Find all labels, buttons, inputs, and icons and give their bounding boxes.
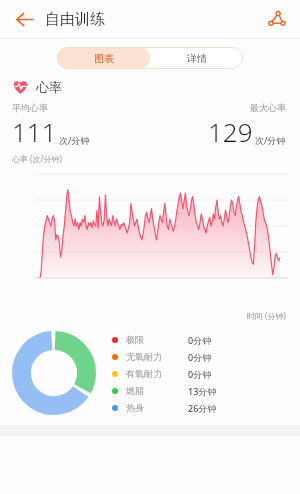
staticText: 无氧耐力 — [126, 351, 188, 362]
staticText: 26分钟 — [188, 402, 217, 414]
staticText: 平均心率 — [12, 102, 48, 113]
staticText: 热身 — [126, 402, 188, 413]
staticText: 燃脂 — [126, 385, 188, 396]
button[interactable]: Back — [9, 4, 39, 34]
staticText: 13分钟 — [188, 385, 217, 397]
staticText: 最大心率 — [250, 102, 286, 113]
staticText: 心率 — [36, 79, 62, 95]
staticText: 图表 — [94, 52, 114, 65]
staticText: 心率 (次/分钟) — [12, 153, 62, 164]
staticText: 时间 (分钟) — [247, 310, 286, 321]
staticText: 详情 — [187, 52, 207, 65]
staticText: 自由训练 — [45, 10, 105, 29]
staticText: 111 — [12, 114, 57, 149]
staticText: 0分钟 — [188, 351, 212, 363]
staticText: 次/分钟 — [255, 134, 286, 146]
staticText: 129 — [208, 114, 253, 149]
staticText: 0分钟 — [188, 368, 212, 380]
button[interactable]: Share — [261, 4, 291, 34]
staticText: 次/分钟 — [59, 134, 90, 146]
button[interactable]: 图表 — [57, 47, 150, 69]
staticText: 有氧耐力 — [126, 368, 188, 379]
staticText: 极限 — [126, 334, 188, 345]
staticText: 0分钟 — [188, 334, 212, 346]
button[interactable]: 详情 — [150, 47, 243, 69]
